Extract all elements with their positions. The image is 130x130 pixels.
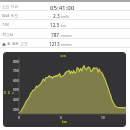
staticText: 700 <box>13 69 19 73</box>
staticText: km <box>62 120 67 124</box>
staticText: 800 <box>13 60 19 64</box>
staticText: 500 <box>13 88 19 92</box>
staticText: 소요 시간 <box>2 4 19 9</box>
staticText: 787 <box>51 32 60 38</box>
staticText: 600 <box>13 79 19 83</box>
staticText: 10 <box>101 116 105 120</box>
staticText: 12.5 <box>50 22 60 28</box>
staticText: 5 <box>60 116 62 120</box>
staticText: 0 <box>18 116 20 120</box>
staticText: km/h <box>61 14 70 18</box>
button[interactable]: 총 획득 고도 <box>0 39 130 48</box>
staticText: km <box>61 23 66 27</box>
staticText: 300 <box>13 108 19 112</box>
staticText: 거리 <box>2 22 10 27</box>
button[interactable]: 소요 시간 <box>0 2 130 11</box>
staticText: 05:41:00 <box>50 3 75 11</box>
button[interactable]: 최고점 <box>0 30 130 39</box>
button[interactable]: 거리 <box>0 20 130 29</box>
staticText: meters <box>61 42 72 46</box>
staticText: meters <box>3 90 15 94</box>
staticText: 고도 <box>60 54 67 58</box>
staticText: 1213 <box>49 41 60 47</box>
staticText: meters <box>61 33 72 37</box>
staticText: 평균 속도 <box>2 13 19 18</box>
staticText: 400 <box>13 98 19 102</box>
staticText: 최고점 <box>2 32 14 37</box>
button[interactable]: 평균 속도 <box>0 11 130 20</box>
staticText: 총 획득 고도 <box>7 41 28 46</box>
staticText: 2.3 <box>53 13 60 19</box>
